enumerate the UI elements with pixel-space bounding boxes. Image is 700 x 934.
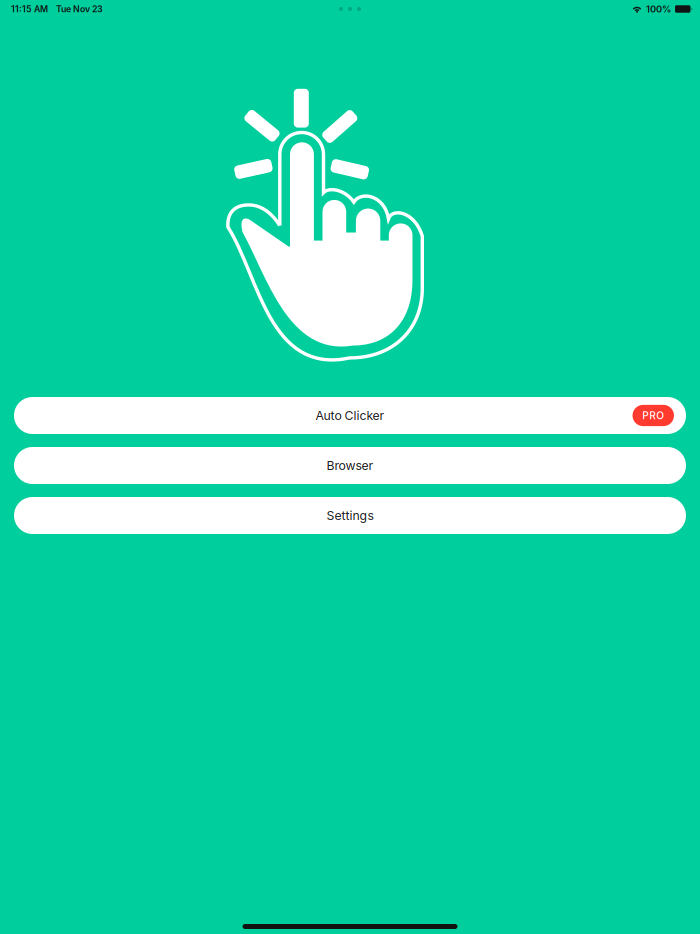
button[interactable]: Settings: [14, 497, 686, 534]
staticText: Tue Nov 23: [56, 4, 103, 14]
staticText: PRO: [642, 409, 664, 422]
staticText: 100%: [646, 3, 671, 15]
staticText: 11:15 AM: [11, 4, 48, 14]
staticText: Browser: [326, 458, 373, 473]
button[interactable]: Auto Clicker: [14, 397, 686, 434]
staticText: Settings: [326, 508, 373, 523]
button[interactable]: Browser: [14, 447, 686, 484]
staticText: Auto Clicker: [315, 408, 384, 423]
